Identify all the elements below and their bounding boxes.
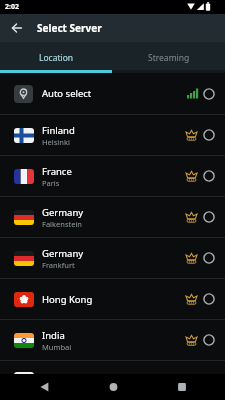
button[interactable]: Hong Kong [0,279,225,319]
staticText: Location [39,52,74,64]
button[interactable]: Auto select [0,73,225,114]
button[interactable]: India [0,320,225,360]
staticText: Frankfurt [42,260,75,270]
button[interactable] [0,374,75,400]
button[interactable] [8,18,28,38]
button[interactable]: Location [0,42,112,73]
button[interactable] [0,361,225,374]
staticText: Germany [42,206,84,219]
button[interactable]: Streaming [112,42,225,73]
staticText: Streaming [148,52,190,64]
staticText: Helsinki [42,137,70,147]
staticText: Germany [42,247,84,260]
staticText: India [42,329,65,342]
staticText: Mumbai [42,342,72,352]
staticText: Falkenstein [42,219,83,229]
staticText: Paris [42,178,60,188]
staticText: 2:02 [5,2,19,12]
button[interactable]: Finland [0,115,225,155]
staticText: Hong Kong [42,293,93,306]
button[interactable]: France [0,156,225,196]
button[interactable] [150,374,225,400]
staticText: Finland [42,124,75,137]
button[interactable] [75,374,150,400]
button[interactable]: Germany [0,238,225,278]
staticText: Auto select [42,87,92,100]
staticText: Select Server [37,21,102,35]
button[interactable]: Germany [0,197,225,237]
staticText: France [42,165,72,178]
